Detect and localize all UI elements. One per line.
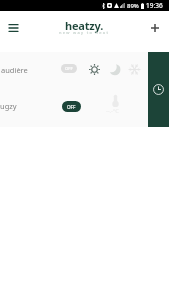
staticText: 19:36 bbox=[146, 1, 163, 10]
button[interactable]: Frost protection mode bbox=[128, 63, 140, 75]
button[interactable]: Open navigation menu bbox=[5, 19, 22, 36]
staticText: 89% bbox=[127, 2, 139, 10]
staticText: OFF bbox=[67, 104, 76, 110]
button[interactable]: Comfort mode bbox=[88, 63, 100, 75]
staticText: audière bbox=[1, 65, 28, 75]
button[interactable]: OFF bbox=[61, 64, 77, 73]
button[interactable]: Schedule bbox=[148, 52, 169, 127]
staticText: new way to heat bbox=[59, 30, 110, 35]
button[interactable]: Eco mode bbox=[109, 63, 121, 75]
staticText: --.-°C bbox=[106, 107, 119, 114]
button[interactable]: audière bbox=[0, 52, 169, 89]
button[interactable]: ugzy bbox=[0, 89, 169, 126]
staticText: ugzy bbox=[0, 101, 17, 111]
staticText: OFF bbox=[65, 66, 73, 72]
button[interactable]: OFF bbox=[62, 101, 81, 112]
button[interactable]: Add device bbox=[146, 19, 163, 36]
staticText: heatzy. bbox=[65, 18, 104, 33]
